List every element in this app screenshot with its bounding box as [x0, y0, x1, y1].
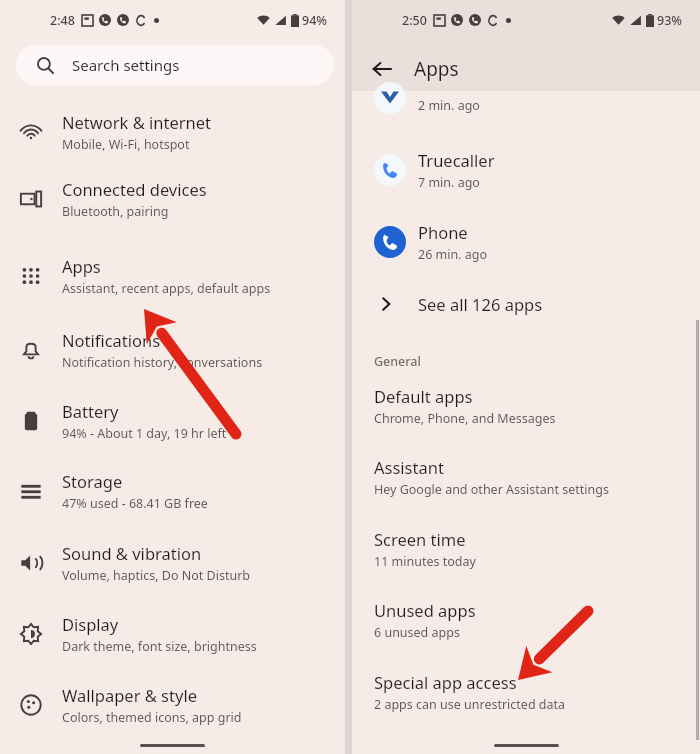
- staticText: 94% - About 1 day, 19 hr left: [62, 425, 227, 442]
- staticText: Network & internet: [62, 111, 212, 133]
- staticText: 26 min. ago: [418, 246, 488, 263]
- staticText: Notifications: [62, 329, 161, 351]
- staticText: General: [374, 353, 421, 370]
- staticText: 47% used - 68.41 GB free: [62, 495, 208, 512]
- staticText: 2:50: [402, 12, 427, 29]
- button[interactable]: Phone: [352, 216, 700, 268]
- button[interactable]: Search settings: [16, 45, 334, 85]
- staticText: Mobile, Wi-Fi, hotspot: [62, 136, 190, 153]
- button[interactable]: Wallpaper & style: [0, 678, 345, 732]
- staticText: Dark theme, font size, brightness: [62, 638, 257, 655]
- staticText: Notification history, conversations: [62, 354, 263, 371]
- staticText: Phone: [418, 221, 468, 243]
- button[interactable]: 2 min. ago: [352, 78, 700, 118]
- staticText: Sound & vibration: [62, 542, 202, 564]
- staticText: Default apps: [374, 385, 473, 407]
- staticText: 2:48: [50, 12, 75, 29]
- staticText: See all 126 apps: [418, 293, 543, 315]
- button[interactable]: Notifications: [0, 323, 345, 377]
- button[interactable]: Screen time: [352, 522, 700, 574]
- staticText: Display: [62, 613, 119, 635]
- staticText: Screen time: [374, 528, 466, 550]
- staticText: Apps: [414, 56, 459, 82]
- staticText: Assistant, recent apps, default apps: [62, 280, 271, 297]
- staticText: Colors, themed icons, app grid: [62, 709, 242, 726]
- staticText: Wallpaper & style: [62, 684, 197, 706]
- staticText: 2 apps can use unrestricted data: [374, 696, 566, 713]
- button[interactable]: Back: [362, 49, 402, 89]
- button[interactable]: Connected devices: [0, 172, 345, 226]
- staticText: Volume, haptics, Do Not Disturb: [62, 567, 251, 584]
- staticText: 11 minutes today: [374, 553, 476, 570]
- button[interactable]: Sound & vibration: [0, 536, 345, 590]
- staticText: Bluetooth, pairing: [62, 203, 169, 220]
- staticText: Assistant: [374, 456, 444, 478]
- staticText: Battery: [62, 400, 119, 422]
- staticText: 2 min. ago: [418, 97, 480, 114]
- button[interactable]: Apps: [0, 249, 345, 303]
- button[interactable]: Default apps: [352, 379, 700, 431]
- staticText: Search settings: [72, 55, 180, 75]
- button[interactable]: Unused apps: [352, 593, 700, 645]
- button[interactable]: Assistant: [352, 450, 700, 502]
- staticText: Connected devices: [62, 178, 207, 200]
- staticText: Storage: [62, 470, 123, 492]
- staticText: Truecaller: [418, 149, 495, 171]
- staticText: Chrome, Phone, and Messages: [374, 410, 556, 427]
- button[interactable]: Special app access: [352, 665, 700, 717]
- button[interactable]: Storage: [0, 464, 345, 518]
- staticText: 6 unused apps: [374, 624, 460, 641]
- button[interactable]: Display: [0, 607, 345, 661]
- button[interactable]: Battery: [0, 394, 345, 448]
- staticText: Special app access: [374, 671, 517, 693]
- staticText: 7 min. ago: [418, 174, 480, 191]
- staticText: 94%: [302, 12, 327, 29]
- button[interactable]: Truecaller: [352, 144, 700, 196]
- button[interactable]: See all 126 apps: [352, 282, 700, 326]
- staticText: Hey Google and other Assistant settings: [374, 481, 609, 498]
- staticText: 93%: [657, 12, 682, 29]
- button[interactable]: Network & internet: [0, 105, 345, 159]
- staticText: Unused apps: [374, 599, 476, 621]
- staticText: Apps: [62, 255, 101, 277]
